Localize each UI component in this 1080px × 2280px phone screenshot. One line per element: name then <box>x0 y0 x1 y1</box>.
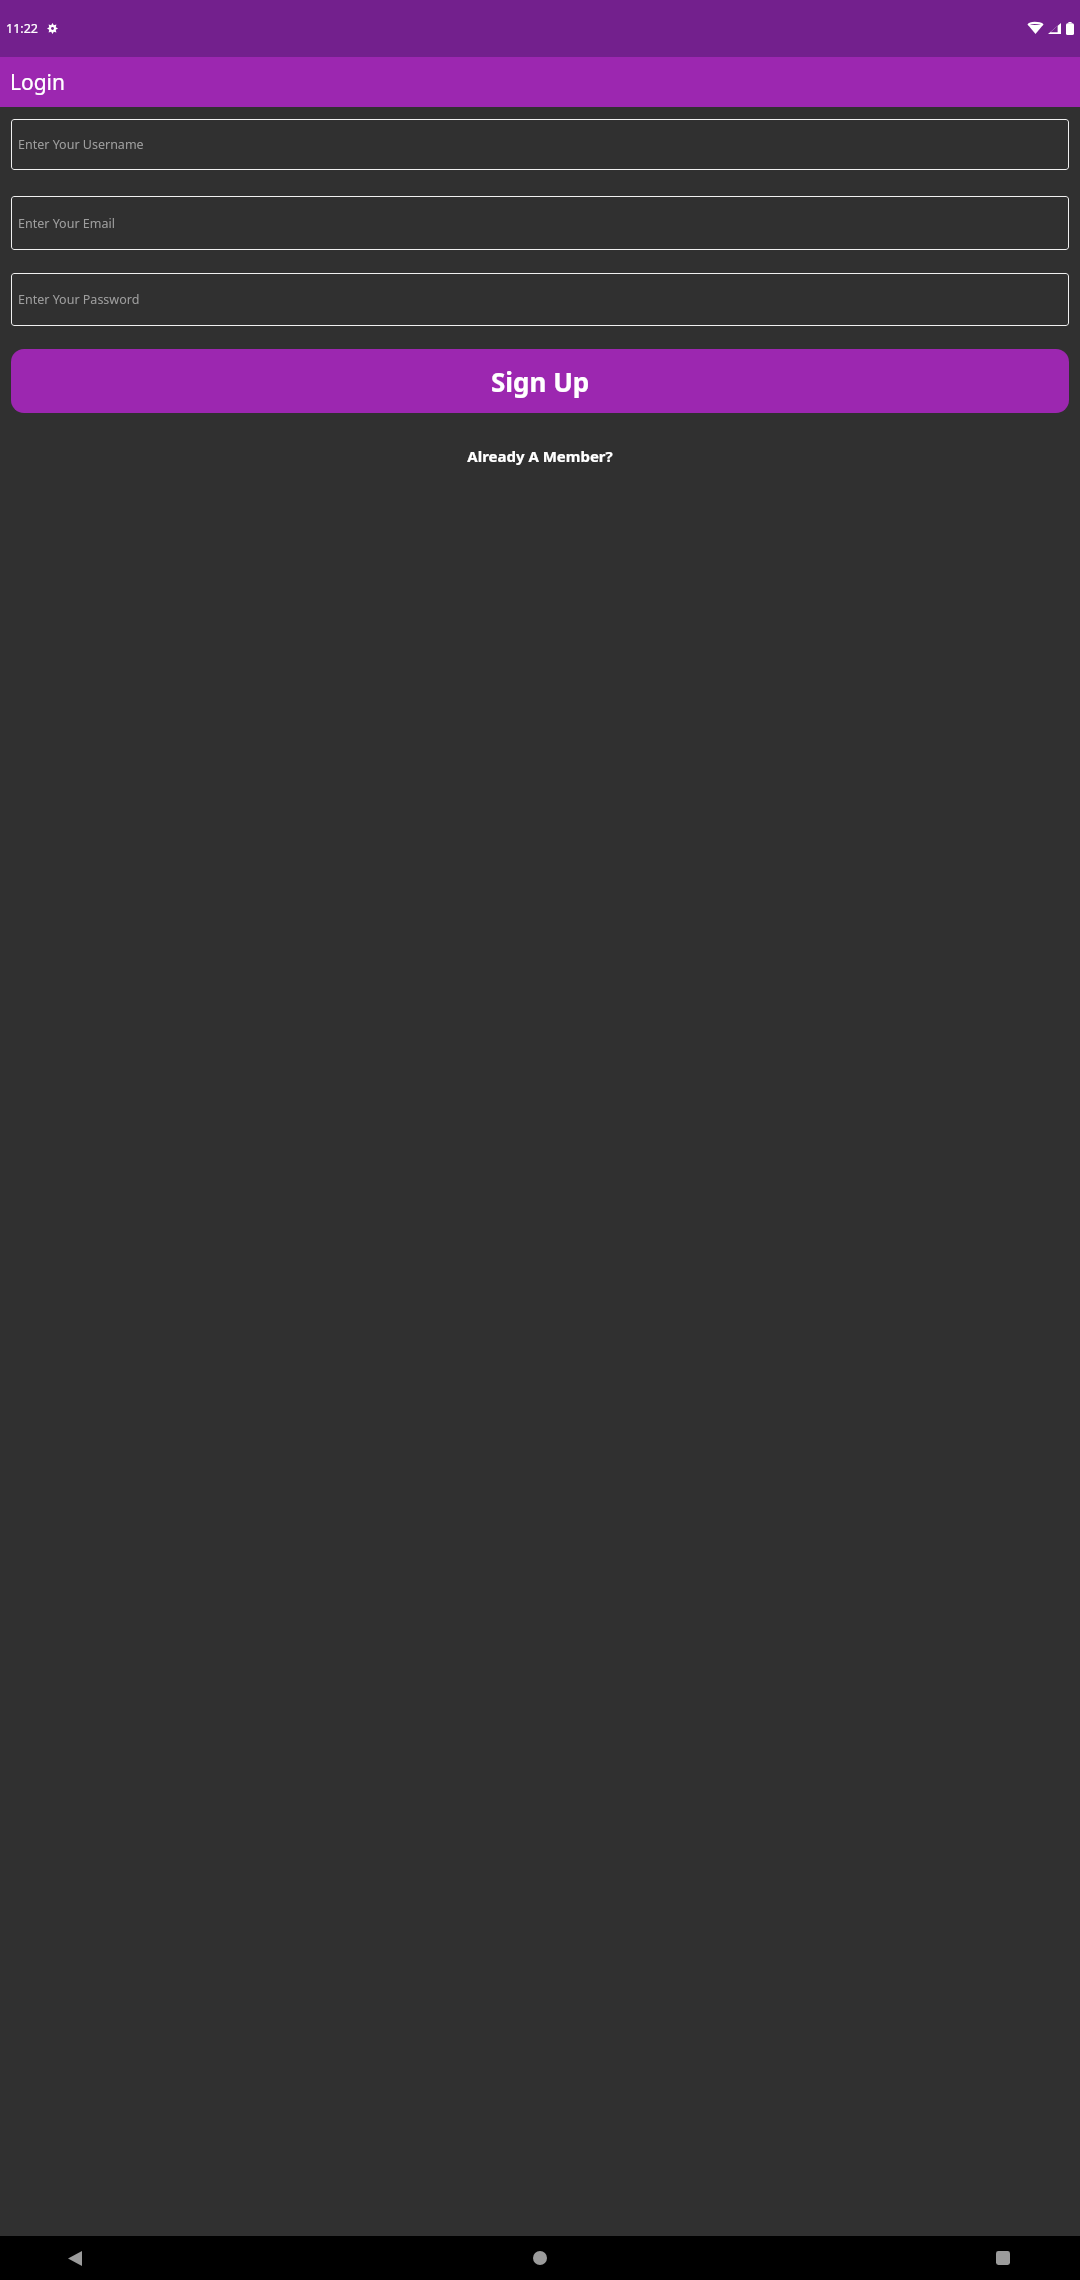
staticText: Enter Your Password <box>18 291 140 308</box>
staticText: Already A Member? <box>467 446 613 466</box>
button[interactable]: Home <box>516 2236 564 2280</box>
staticText: Sign Up <box>491 364 590 399</box>
staticText: Enter Your Email <box>18 215 115 232</box>
button[interactable]: Enter Your Username <box>11 119 1069 170</box>
staticText: 11:22 <box>6 20 38 37</box>
staticText: Login <box>10 68 66 97</box>
button[interactable]: Back <box>51 2236 99 2280</box>
button[interactable]: Sign Up <box>11 349 1069 413</box>
button[interactable]: Recent apps <box>979 2236 1027 2280</box>
button[interactable]: Enter Your Password <box>11 273 1069 326</box>
staticText: Enter Your Username <box>18 136 144 153</box>
button[interactable]: Enter Your Email <box>11 196 1069 250</box>
button[interactable]: Already A Member? <box>11 446 1069 466</box>
